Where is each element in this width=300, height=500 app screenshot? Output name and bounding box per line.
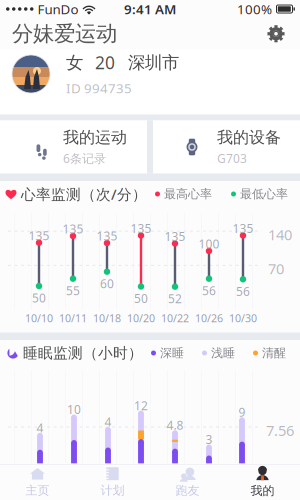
staticText: 10/22 bbox=[161, 311, 189, 325]
staticText: 135 bbox=[62, 221, 83, 237]
staticText: 50 bbox=[32, 290, 46, 306]
staticText: 主页 bbox=[25, 483, 49, 498]
button[interactable]: 主页 bbox=[0, 467, 75, 498]
button[interactable]: 计划 bbox=[75, 467, 150, 498]
button[interactable]: 跑友 bbox=[150, 467, 225, 498]
staticText: 我的 bbox=[250, 483, 274, 498]
staticText: 10/11 bbox=[59, 311, 87, 325]
staticText: 6条记录 bbox=[63, 150, 106, 166]
button[interactable]: 设置 bbox=[262, 20, 290, 48]
staticText: 100% bbox=[237, 0, 272, 18]
button[interactable]: 女 bbox=[0, 49, 300, 114]
staticText: 70 bbox=[268, 259, 284, 278]
staticText: 135 bbox=[96, 228, 117, 244]
staticText: 9:41 AM bbox=[124, 0, 176, 18]
staticText: 10/10 bbox=[25, 311, 53, 325]
button[interactable]: 我的运动 bbox=[0, 120, 147, 173]
staticText: 计划 bbox=[100, 483, 124, 498]
staticText: 60 bbox=[100, 276, 114, 292]
staticText: 3 bbox=[205, 431, 212, 447]
staticText: 清醒 bbox=[262, 346, 286, 360]
staticText: 睡眠监测（小时） bbox=[23, 344, 143, 362]
staticText: 55 bbox=[66, 283, 80, 299]
staticText: 10 bbox=[67, 401, 81, 417]
staticText: 深睡 bbox=[160, 346, 184, 360]
staticText: 135 bbox=[130, 220, 151, 236]
staticText: 56 bbox=[236, 283, 250, 299]
staticText: 最低心率 bbox=[240, 187, 288, 201]
staticText: 我的运动 bbox=[63, 128, 127, 147]
staticText: 最高心率 bbox=[164, 187, 212, 201]
staticText: 4 bbox=[104, 414, 111, 430]
button[interactable]: 我的设备 bbox=[153, 120, 300, 173]
staticText: 100 bbox=[198, 236, 219, 252]
staticText: 女 bbox=[66, 52, 83, 73]
staticText: 9 bbox=[238, 404, 245, 420]
staticText: 我的设备 bbox=[217, 128, 281, 147]
staticText: 心率监测（次/分） bbox=[21, 184, 147, 204]
staticText: 140 bbox=[268, 225, 292, 244]
staticText: 20 bbox=[95, 51, 115, 74]
staticText: 7.56 bbox=[266, 421, 294, 440]
staticText: 12 bbox=[134, 398, 148, 413]
staticText: 10/20 bbox=[127, 311, 155, 325]
staticText: 52 bbox=[168, 291, 182, 307]
staticText: 10/30 bbox=[229, 311, 257, 325]
staticText: ID 994735 bbox=[66, 79, 132, 97]
staticText: 跑友 bbox=[175, 483, 199, 498]
staticText: 10/18 bbox=[93, 311, 121, 325]
button[interactable]: 我的 bbox=[225, 467, 300, 498]
staticText: FunDo bbox=[37, 0, 78, 18]
staticText: 135 bbox=[28, 228, 49, 244]
staticText: G703 bbox=[217, 150, 247, 166]
staticText: 10/26 bbox=[195, 311, 223, 325]
staticText: 4 bbox=[36, 420, 43, 436]
staticText: 深圳市 bbox=[128, 52, 179, 73]
staticText: 135 bbox=[164, 228, 185, 244]
staticText: 分妹爱运动 bbox=[12, 21, 117, 47]
staticText: 56 bbox=[202, 283, 216, 299]
staticText: 135 bbox=[232, 220, 253, 236]
staticText: 浅睡 bbox=[211, 346, 235, 360]
staticText: 4.8 bbox=[166, 417, 183, 433]
staticText: 50 bbox=[134, 290, 148, 306]
